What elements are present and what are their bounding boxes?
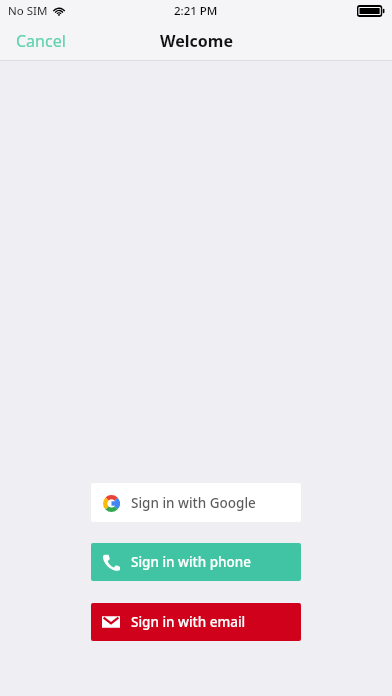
button[interactable]: Cancel <box>0 24 82 58</box>
staticText: Cancel <box>16 30 66 52</box>
staticText: Sign in with phone <box>131 553 252 571</box>
staticText: Sign in with Google <box>131 494 256 512</box>
other: Google logo <box>103 495 120 512</box>
button[interactable]: Phone <box>91 543 301 581</box>
staticText: No SIM <box>8 3 48 19</box>
staticText: 2:21 PM <box>174 3 218 19</box>
other: Email <box>102 613 120 631</box>
button[interactable]: Email <box>91 603 301 641</box>
staticText: Welcome <box>160 30 233 52</box>
button[interactable]: Google logo <box>91 483 301 522</box>
other: Phone <box>102 553 120 571</box>
staticText: Sign in with email <box>131 613 246 631</box>
